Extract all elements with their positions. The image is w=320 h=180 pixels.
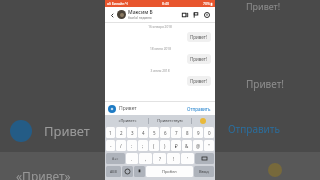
button[interactable]: 0 — [204, 127, 214, 138]
staticText: ; — [142, 143, 144, 149]
button[interactable]: Change language — [122, 166, 133, 177]
button[interactable]: ? — [153, 153, 166, 164]
button[interactable]: 4 — [138, 127, 148, 138]
staticText: . — [131, 156, 133, 162]
staticText: 18 июня 2018 — [150, 47, 171, 51]
staticText: 6 — [164, 130, 167, 136]
staticText: - — [110, 143, 112, 149]
button[interactable]: Emoji suggestion — [192, 118, 213, 124]
staticText: 0 — [208, 130, 211, 136]
staticText: Привет — [119, 105, 186, 112]
staticText: ? — [159, 156, 161, 162]
staticText: Отправить — [228, 122, 280, 136]
staticText: " — [208, 143, 210, 149]
button[interactable]: Back — [108, 11, 116, 19]
staticText: Ввод — [199, 169, 209, 174]
button[interactable]: 9 — [193, 127, 203, 138]
staticText: 70% ▮ — [203, 1, 213, 6]
staticText: 8 — [186, 130, 189, 136]
button[interactable]: 1 — [106, 127, 115, 138]
staticText: 3 — [131, 130, 134, 136]
staticText: : — [131, 143, 133, 149]
button[interactable]: Приветствую — [149, 118, 191, 123]
staticText: ( — [153, 143, 155, 149]
button[interactable]: @ — [193, 140, 203, 151]
staticText: «Привет» — [118, 118, 137, 123]
button[interactable]: «Привет» — [107, 118, 148, 123]
button[interactable]: Flag — [190, 9, 201, 20]
button[interactable]: 7 — [171, 127, 181, 138]
staticText: 2 — [120, 130, 123, 136]
button[interactable]: : — [127, 140, 137, 151]
button[interactable]: Пробел — [146, 166, 193, 177]
staticText: Привет! — [190, 34, 208, 40]
staticText: Привет! — [190, 56, 208, 62]
button[interactable]: / — [116, 140, 126, 151]
button[interactable]: #+= — [106, 153, 125, 164]
staticText: Максим Б — [128, 9, 153, 16]
staticText: был(а) недавно — [128, 16, 152, 20]
staticText: 5 — [153, 130, 156, 136]
button[interactable]: Привет! — [187, 76, 211, 86]
button[interactable]: АБВ — [106, 166, 121, 177]
button[interactable]: Привет! — [187, 54, 211, 64]
button[interactable]: " — [204, 140, 214, 151]
button[interactable]: Video call — [179, 9, 190, 20]
button[interactable]: ₽ — [171, 140, 181, 151]
button[interactable]: 5 — [149, 127, 159, 138]
staticText: ! — [173, 156, 175, 162]
button[interactable]: Отправить — [186, 105, 212, 113]
staticText: Привет! — [246, 77, 285, 91]
staticText: 16 января 2018 — [148, 25, 172, 29]
staticText: Привет — [44, 122, 90, 140]
staticText: ' — [187, 156, 189, 162]
button[interactable]: Привет! — [187, 32, 211, 42]
staticText: ) — [164, 143, 166, 149]
staticText: & — [185, 143, 189, 149]
button[interactable]: ; — [138, 140, 148, 151]
button[interactable]: Ввод — [194, 166, 214, 177]
staticText: #+= — [112, 156, 119, 161]
staticText: ali Билайн Ч — [107, 1, 128, 6]
staticText: , — [145, 156, 147, 162]
staticText: 1 — [109, 130, 112, 136]
button[interactable]: ! — [167, 153, 180, 164]
staticText: Привет! — [190, 78, 208, 84]
button[interactable]: ) — [160, 140, 170, 151]
button[interactable]: 3 — [127, 127, 137, 138]
staticText: @ — [196, 143, 201, 149]
button[interactable]: & — [182, 140, 192, 151]
staticText: Приветствую — [157, 118, 183, 123]
button[interactable]: 2 — [116, 127, 126, 138]
button[interactable]: Backspace — [195, 153, 214, 164]
staticText: Пробел — [162, 169, 177, 174]
staticText: 4 — [142, 130, 145, 136]
button[interactable]: - — [106, 140, 115, 151]
button[interactable]: ' — [181, 153, 194, 164]
button[interactable]: Attach — [108, 105, 116, 113]
staticText: 7 — [175, 130, 178, 136]
button[interactable]: , — [139, 153, 152, 164]
staticText: АБВ — [110, 169, 117, 174]
button[interactable]: 6 — [160, 127, 170, 138]
button[interactable]: 8 — [182, 127, 192, 138]
staticText: 9 — [197, 130, 200, 136]
staticText: 8:40 — [162, 1, 169, 6]
staticText: Привет! — [246, 0, 281, 12]
button[interactable]: ( — [149, 140, 159, 151]
button[interactable]: Voice input — [134, 166, 145, 177]
staticText: ₽ — [175, 143, 178, 149]
button[interactable]: Info — [201, 9, 212, 20]
staticText: / — [120, 143, 122, 149]
staticText: 3 июля 2018 — [150, 69, 170, 73]
staticText: «Привет» — [16, 168, 71, 180]
button[interactable]: Максим Б — [128, 9, 179, 20]
button[interactable]: . — [126, 153, 138, 164]
staticText: Отправить — [187, 106, 211, 112]
